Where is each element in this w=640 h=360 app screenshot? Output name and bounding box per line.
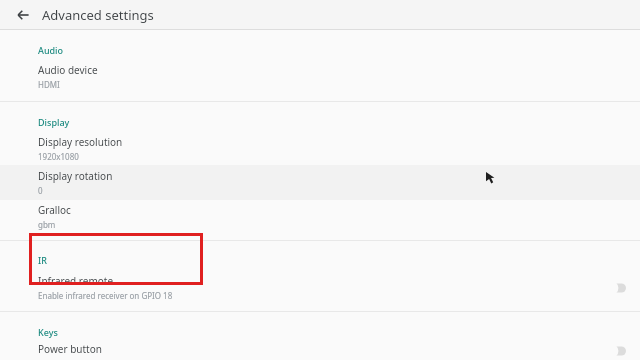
button[interactable]: Display resolution: [0, 132, 640, 165]
staticText: 1920x1080: [38, 151, 79, 162]
button[interactable]: Power button: [0, 342, 640, 360]
staticText: Gralloc: [38, 203, 71, 217]
staticText: Power button: [38, 342, 102, 356]
button[interactable]: Toggle Infrared remote: [598, 278, 628, 298]
button[interactable]: Infrared remote: [0, 270, 640, 305]
staticText: Advanced settings: [42, 6, 154, 24]
staticText: Infrared remote: [38, 274, 114, 288]
staticText: Enable infrared receiver on GPIO 18: [38, 290, 173, 301]
button[interactable]: Audio device: [0, 60, 640, 93]
staticText: Display resolution: [38, 135, 123, 149]
staticText: Display: [38, 116, 70, 128]
button[interactable]: Back: [12, 4, 34, 26]
button[interactable]: Gralloc: [0, 200, 640, 233]
staticText: Audio device: [38, 63, 98, 77]
staticText: HDMI: [38, 79, 60, 90]
staticText: Audio: [38, 44, 64, 56]
staticText: Display rotation: [38, 169, 113, 183]
staticText: gbm: [38, 219, 56, 230]
button[interactable]: Toggle Power button: [598, 342, 628, 360]
staticText: 0: [38, 185, 43, 196]
staticText: IR: [38, 254, 47, 266]
staticText: Keys: [38, 326, 58, 338]
button[interactable]: Display rotation: [0, 165, 640, 200]
